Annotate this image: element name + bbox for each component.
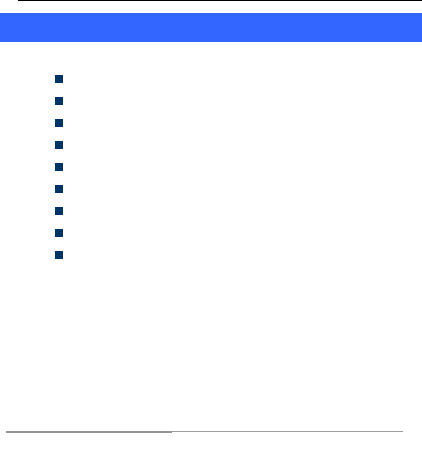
button[interactable]: List item 8 <box>0 229 422 251</box>
button[interactable]: List item 6 <box>0 185 422 207</box>
button[interactable]: List item 2 <box>0 97 422 119</box>
button[interactable]: List item 3 <box>0 119 422 141</box>
button[interactable]: List item 9 <box>0 251 422 259</box>
button[interactable]: List item 7 <box>0 207 422 229</box>
button[interactable]: List item 1 <box>0 75 422 97</box>
button[interactable]: List item 5 <box>0 163 422 185</box>
button[interactable]: List item 4 <box>0 141 422 163</box>
